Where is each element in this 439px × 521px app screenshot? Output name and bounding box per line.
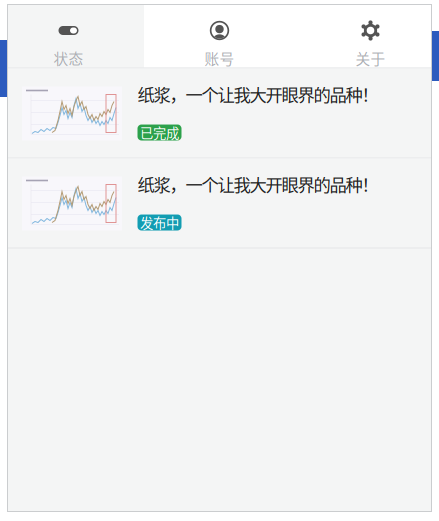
button[interactable]: 账号 xyxy=(144,4,295,67)
button[interactable]: 关于 xyxy=(295,4,439,67)
staticText: 关于 xyxy=(355,47,385,69)
button[interactable]: 纸浆，一个让我大开眼界的品种！ xyxy=(7,158,431,247)
button[interactable]: 状态 xyxy=(0,4,144,67)
staticText: 状态 xyxy=(53,47,83,69)
staticText: 发布中 xyxy=(140,213,179,232)
staticText: 已完成 xyxy=(140,123,179,142)
staticText: 纸浆，一个让我大开眼界的品种！ xyxy=(137,81,378,107)
staticText: 纸浆，一个让我大开眼界的品种！ xyxy=(137,171,378,197)
button[interactable]: 纸浆，一个让我大开眼界的品种！ xyxy=(7,68,431,157)
staticText: 账号 xyxy=(204,47,234,69)
